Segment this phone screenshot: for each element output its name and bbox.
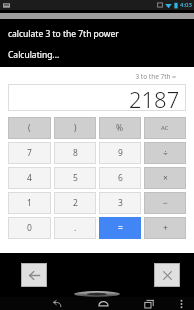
button[interactable]: 8: [54, 142, 96, 164]
staticText: 3 to the 7th =: [8, 72, 176, 81]
staticText: ): [74, 122, 77, 134]
button[interactable]: 6: [99, 167, 141, 189]
button[interactable]: 3: [99, 192, 141, 214]
staticText: =: [118, 222, 123, 234]
staticText: 2187: [129, 84, 180, 111]
button[interactable]: .: [54, 217, 96, 239]
staticText: 0: [27, 222, 32, 234]
button[interactable]: More options: [172, 297, 190, 310]
button[interactable]: =: [99, 217, 141, 239]
staticText: 7: [27, 147, 32, 159]
button[interactable]: Back: [21, 263, 47, 287]
staticText: ÷: [163, 147, 168, 159]
button[interactable]: 0: [8, 217, 51, 239]
staticText: Calculating...: [8, 49, 60, 61]
button[interactable]: 1: [8, 192, 51, 214]
staticText: 1: [27, 197, 32, 209]
staticText: calculate 3 to the 7th power: [8, 28, 119, 40]
staticText: 4:03: [180, 1, 192, 9]
staticText: AC: [161, 124, 169, 132]
button[interactable]: (: [8, 117, 51, 139]
button[interactable]: AC: [144, 117, 186, 139]
staticText: 5: [73, 172, 78, 184]
staticText: −: [163, 197, 168, 209]
staticText: 4: [27, 172, 32, 184]
staticText: 8: [73, 147, 78, 159]
button[interactable]: 2: [54, 192, 96, 214]
button[interactable]: ÷: [144, 142, 186, 164]
button[interactable]: 9: [99, 142, 141, 164]
staticText: (: [28, 122, 31, 134]
button[interactable]: −: [144, 192, 186, 214]
button[interactable]: 7: [8, 142, 51, 164]
button[interactable]: Recent apps: [138, 297, 160, 310]
button[interactable]: ): [54, 117, 96, 139]
staticText: 6: [118, 172, 123, 184]
button[interactable]: Close: [154, 263, 180, 287]
staticText: ×: [163, 172, 168, 184]
staticText: +: [163, 222, 168, 234]
button[interactable]: Back: [46, 297, 68, 310]
button[interactable]: 4: [8, 167, 51, 189]
staticText: 2: [73, 197, 78, 209]
button[interactable]: ×: [144, 167, 186, 189]
staticText: 9: [118, 147, 123, 159]
button[interactable]: 5: [54, 167, 96, 189]
button[interactable]: +: [144, 217, 186, 239]
staticText: .: [74, 222, 77, 234]
staticText: 3: [118, 197, 123, 209]
button[interactable]: Home: [92, 297, 114, 310]
staticText: %: [116, 122, 124, 134]
button[interactable]: %: [99, 117, 141, 139]
